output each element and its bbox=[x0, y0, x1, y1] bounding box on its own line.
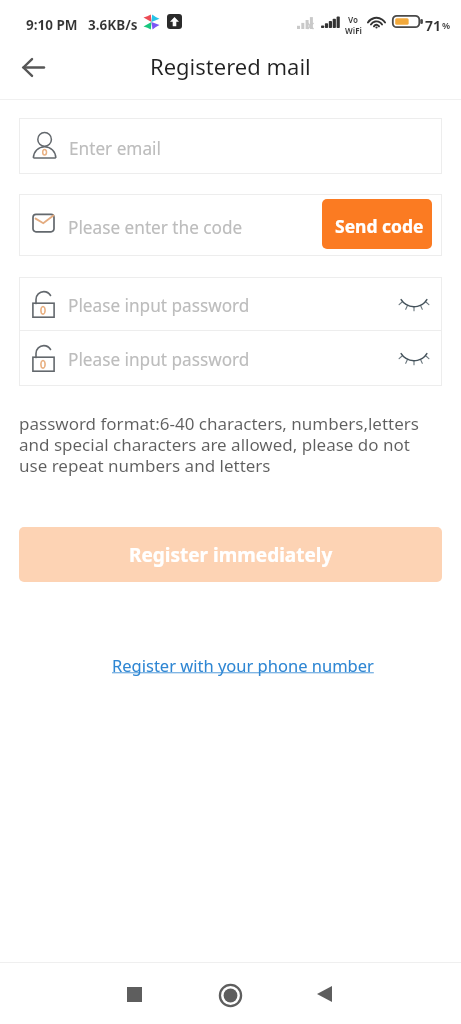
button[interactable]: Show password bbox=[385, 331, 442, 384]
button[interactable]: Register immediately bbox=[19, 527, 442, 582]
button[interactable]: Back bbox=[13, 47, 53, 87]
staticText: Registered mail bbox=[150, 51, 311, 81]
staticText: Send code bbox=[335, 214, 424, 238]
staticText: 71 bbox=[425, 16, 442, 35]
button[interactable]: Show password bbox=[385, 277, 442, 330]
button[interactable]: Please input password bbox=[19, 331, 442, 384]
staticText: % bbox=[442, 19, 451, 31]
button[interactable]: Back bbox=[300, 970, 348, 1018]
staticText: Please input password bbox=[68, 348, 250, 371]
staticText: Vo bbox=[348, 14, 359, 25]
button[interactable]: Recent apps bbox=[110, 970, 158, 1018]
staticText: Register immediately bbox=[129, 542, 333, 568]
staticText: WiFi bbox=[345, 25, 362, 36]
button[interactable]: Send code bbox=[322, 199, 432, 249]
button[interactable]: Please input password bbox=[19, 277, 442, 330]
button[interactable]: Register with your phone number bbox=[112, 654, 374, 676]
button[interactable]: Enter email bbox=[19, 118, 442, 174]
staticText: 9:10 PM bbox=[26, 16, 78, 34]
staticText: Please input password bbox=[68, 294, 250, 317]
staticText: password format:6-40 characters, numbers… bbox=[19, 412, 442, 477]
staticText: Please enter the code bbox=[68, 216, 243, 239]
staticText: Enter email bbox=[69, 137, 161, 160]
button[interactable]: Home bbox=[206, 971, 254, 1019]
staticText: 3.6KB/s bbox=[88, 16, 138, 34]
